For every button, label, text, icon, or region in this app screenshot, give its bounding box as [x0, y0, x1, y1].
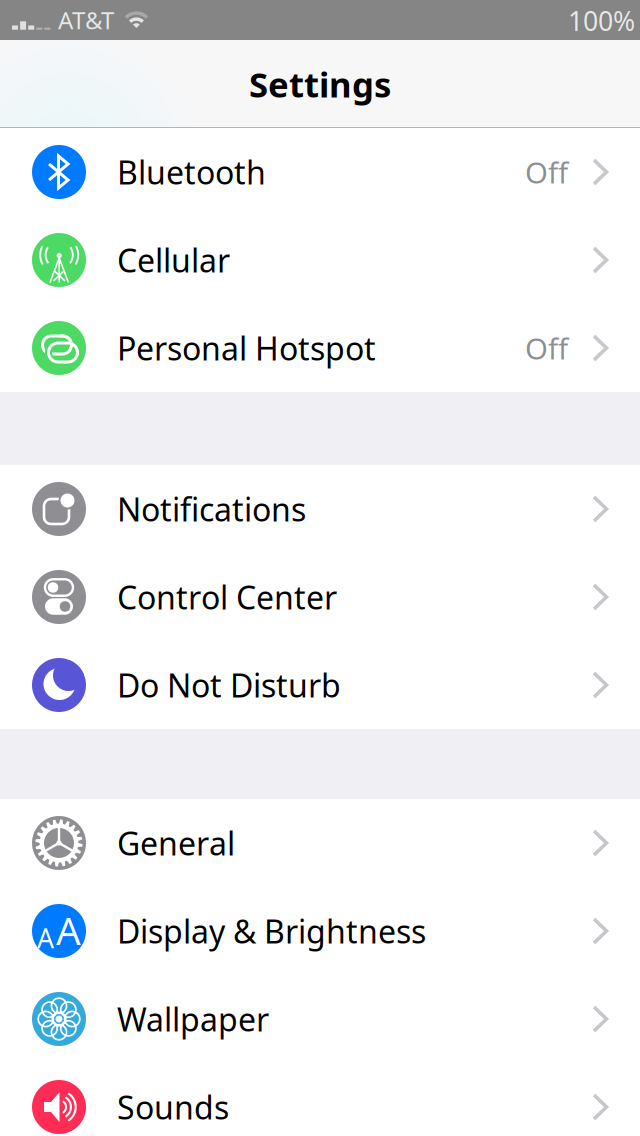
staticText: Display & Brightness — [117, 910, 426, 952]
button[interactable]: Bluetooth — [0, 128, 640, 216]
button[interactable]: Control Center — [0, 553, 640, 641]
button[interactable]: General — [0, 799, 640, 887]
staticText: Notifications — [117, 488, 306, 530]
button[interactable]: Notifications — [0, 465, 640, 553]
staticText: A — [56, 904, 81, 956]
staticText: Settings — [249, 61, 391, 107]
staticText: Control Center — [117, 576, 337, 618]
button[interactable]: Sounds — [0, 1063, 640, 1136]
button[interactable]: Do Not Disturb — [0, 641, 640, 729]
staticText: 100% — [568, 3, 635, 38]
staticText: Personal Hotspot — [117, 327, 376, 369]
staticText: Off — [525, 328, 568, 367]
staticText: General — [117, 822, 235, 864]
staticText: Sounds — [117, 1086, 229, 1128]
staticText: Wallpaper — [117, 998, 269, 1040]
staticText: Cellular — [117, 239, 230, 281]
staticText: A — [37, 920, 54, 956]
button[interactable]: Personal Hotspot — [0, 304, 640, 392]
button[interactable]: Wallpaper — [0, 975, 640, 1063]
button[interactable]: A — [0, 887, 640, 975]
button[interactable]: Cellular — [0, 216, 640, 304]
staticText: AT&T — [58, 4, 114, 36]
staticText: Do Not Disturb — [117, 664, 341, 706]
staticText: Off — [525, 152, 568, 191]
staticText: Bluetooth — [117, 151, 266, 193]
